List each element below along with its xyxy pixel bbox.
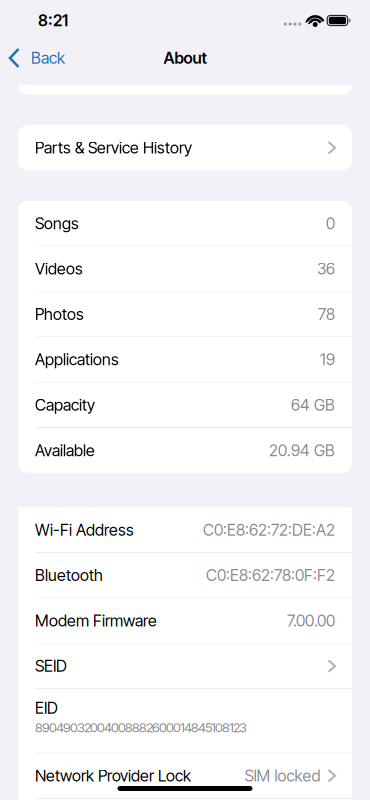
staticText: C0:E8:62:72:DE:A2: [203, 520, 335, 539]
staticText: Songs: [35, 214, 79, 233]
staticText: 89049032004008882600014845108123: [35, 719, 247, 735]
staticText: Parts & Service History: [35, 138, 192, 157]
button[interactable]: Parts & Service History: [18, 125, 352, 170]
staticText: Applications: [35, 350, 119, 369]
staticText: SEID: [35, 657, 67, 675]
staticText: Videos: [35, 259, 83, 278]
staticText: C0:E8:62:78:0F:F2: [206, 566, 335, 585]
staticText: Photos: [35, 305, 84, 324]
staticText: Network Provider Lock: [35, 766, 191, 785]
staticText: 20.94 GB: [269, 441, 335, 460]
staticText: 64 GB: [291, 395, 335, 414]
staticText: EID: [35, 699, 58, 717]
staticText: SIM locked: [244, 766, 320, 785]
staticText: 0: [326, 214, 335, 233]
staticText: Back: [31, 49, 65, 67]
staticText: Available: [35, 441, 95, 460]
staticText: Bluetooth: [35, 566, 103, 585]
staticText: 8:21: [38, 11, 68, 30]
staticText: Wi-Fi Address: [35, 520, 134, 539]
staticText: Capacity: [35, 395, 95, 414]
staticText: About: [163, 49, 206, 67]
button[interactable]: Back: [0, 49, 65, 67]
button[interactable]: SEID: [18, 644, 352, 688]
staticText: 78: [318, 305, 335, 324]
staticText: 7.00.00: [287, 611, 335, 630]
staticText: 36: [317, 259, 335, 278]
button[interactable]: Network Provider Lock: [18, 753, 352, 798]
staticText: Modem Firmware: [35, 611, 157, 630]
staticText: 19: [320, 350, 335, 369]
